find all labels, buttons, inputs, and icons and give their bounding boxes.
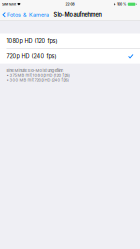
staticText: • 300 MB mit 720p HD (240 fps): [6, 77, 68, 82]
staticText: 100 %: [117, 2, 126, 6]
staticText: 1080p HD (120 fps): [6, 37, 57, 44]
staticText: 22:08: [65, 2, 74, 6]
staticText: Eine Minute Slo-Mo ist ungefähr:: [6, 68, 64, 73]
button[interactable]: 1080p HD (120 fps): [0, 33, 140, 48]
staticText: • 375 MB mit 1080p HD (120 fps): [6, 73, 69, 78]
staticText: Fotos & Kamera: [7, 11, 49, 18]
button[interactable]: Fotos & Kamera: [0, 9, 50, 20]
staticText: Slo-Mo aufnehmen: [53, 11, 101, 18]
button[interactable]: 720p HD (240 fps): [0, 49, 140, 64]
staticText: SIM fehlt: [2, 2, 16, 6]
staticText: 720p HD (240 fps): [6, 53, 56, 60]
